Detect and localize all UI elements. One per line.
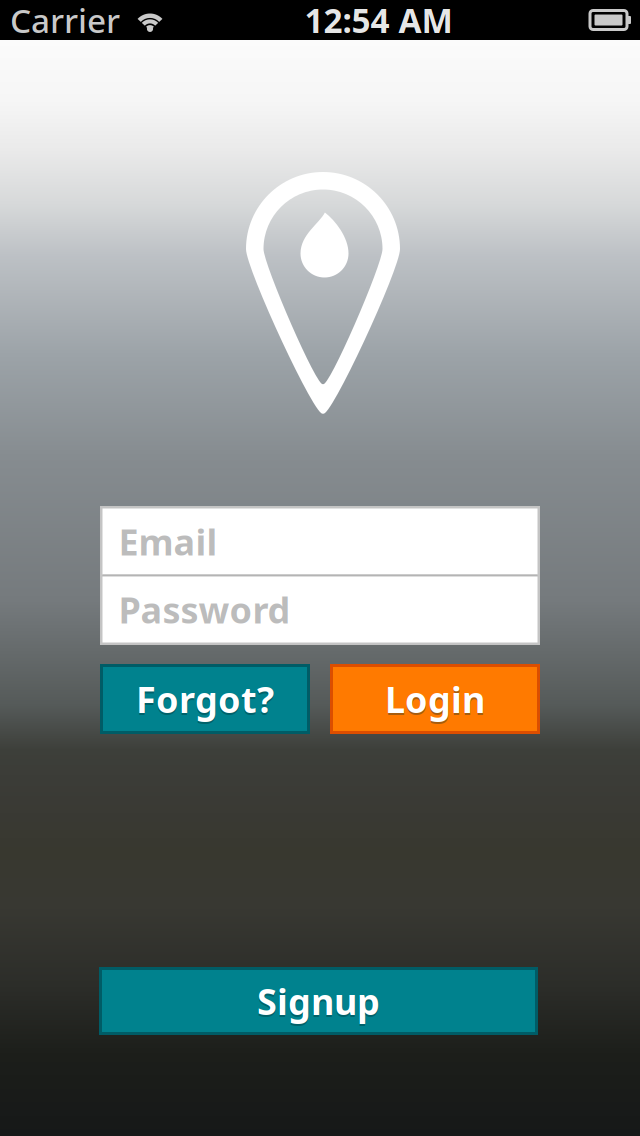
staticText: Signup [257, 977, 380, 1025]
button[interactable]: Email [102, 508, 537, 574]
staticText: Password [118, 586, 290, 633]
staticText: 12:54 AM [304, 0, 452, 42]
button[interactable]: Forgot? [100, 664, 310, 734]
staticText: Forgot? [136, 677, 274, 725]
staticText: Login [385, 675, 485, 723]
button[interactable]: Signup [99, 967, 538, 1035]
staticText: Email [118, 518, 217, 565]
button[interactable]: Login [330, 664, 540, 734]
staticText: Signup [257, 979, 380, 1027]
staticText: Forgot? [136, 675, 274, 723]
button[interactable]: Password [102, 576, 537, 642]
staticText: Login [385, 677, 485, 725]
staticText: Carrier [10, 0, 120, 42]
